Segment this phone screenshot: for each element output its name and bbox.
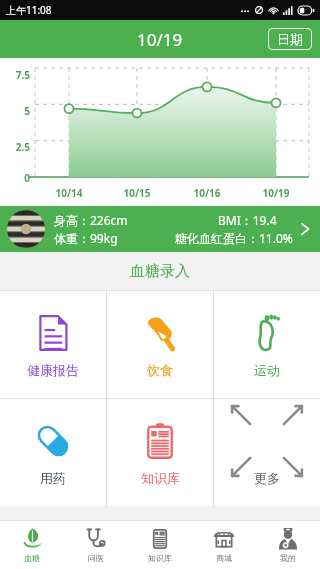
staticText: 饮食 [147, 362, 173, 378]
staticText: 5 [2, 104, 30, 118]
button[interactable]: 身高：226cm [0, 206, 320, 252]
staticText: 0 [2, 171, 30, 185]
staticText: 身高：226cm [54, 212, 128, 228]
staticText: 用药 [40, 470, 66, 486]
staticText: 10/19 [256, 186, 296, 200]
button[interactable]: 知识库 [107, 399, 213, 506]
staticText: 商城 [216, 553, 232, 563]
button[interactable]: 血糖录入 [0, 252, 320, 290]
button[interactable]: 用药 [0, 399, 106, 506]
staticText: 糖化血红蛋白：11.0% [175, 230, 293, 246]
staticText: 10/19 [137, 28, 183, 51]
button[interactable]: 问医 [64, 521, 128, 569]
staticText: 更多 [254, 470, 280, 486]
button[interactable]: 血糖 [0, 521, 64, 569]
staticText: 10/16 [187, 186, 227, 200]
staticText: 运动 [254, 362, 280, 378]
staticText: 7.5 [2, 68, 30, 82]
button[interactable]: 知识库 [128, 521, 192, 569]
staticText: 2.5 [2, 140, 30, 154]
button[interactable]: 健康报告 [0, 291, 106, 398]
staticText: 健康报告 [27, 362, 79, 378]
staticText: 问医 [88, 553, 104, 563]
staticText: 10/15 [117, 186, 157, 200]
button[interactable]: 更多 [214, 399, 320, 506]
staticText: 我的 [280, 553, 296, 563]
button[interactable]: 运动 [214, 291, 320, 398]
staticText: 血糖录入 [130, 262, 190, 281]
button[interactable]: 商城 [192, 521, 256, 569]
staticText: 知识库 [141, 470, 180, 486]
staticText: 日期 [277, 31, 303, 47]
staticText: 血糖 [24, 553, 40, 563]
staticText: 知识库 [148, 553, 172, 563]
staticText: 10/14 [49, 186, 89, 200]
staticText: 上午11:08 [6, 3, 52, 17]
button[interactable]: 饮食 [107, 291, 213, 398]
staticText: BMI：19.4 [218, 212, 277, 228]
button[interactable]: 我的 [256, 521, 320, 569]
staticText: 体重：99kg [54, 230, 118, 246]
button[interactable]: 日期 [268, 28, 312, 50]
other: Details [297, 221, 313, 237]
